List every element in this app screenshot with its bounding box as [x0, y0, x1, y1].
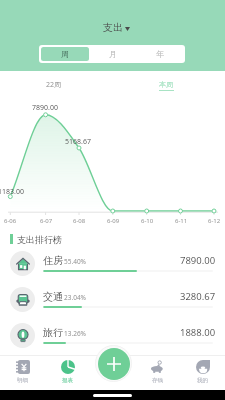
- staticText: 6-11: [175, 217, 188, 225]
- button[interactable]: 存钱: [135, 360, 180, 390]
- button[interactable]: 支出: [101, 20, 133, 34]
- staticText: 23.04%: [64, 293, 87, 302]
- staticText: 13.26%: [64, 329, 87, 338]
- button[interactable]: 住房: [0, 246, 225, 282]
- button[interactable]: 周: [41, 47, 89, 61]
- staticText: 报表: [62, 377, 73, 384]
- staticText: 我的: [197, 377, 208, 384]
- button[interactable]: 本周: [159, 80, 174, 91]
- button[interactable]: 我的: [180, 360, 225, 390]
- staticText: 交通: [43, 290, 63, 303]
- staticText: 住房: [43, 254, 63, 267]
- staticText: 5168.67: [65, 137, 91, 147]
- staticText: 周: [61, 49, 69, 59]
- staticText: 6-09: [107, 217, 120, 225]
- staticText: 22周: [46, 80, 62, 90]
- staticText: 旅行: [43, 326, 63, 339]
- staticText: 7890.00: [180, 254, 216, 267]
- staticText: 3280.67: [180, 290, 216, 303]
- staticText: 支出排行榜: [17, 234, 62, 245]
- staticText: 6-06: [4, 217, 17, 225]
- staticText: 支出: [103, 21, 123, 34]
- staticText: 年: [156, 49, 164, 59]
- staticText: 6-10: [141, 217, 154, 225]
- button[interactable]: 交通: [0, 282, 225, 318]
- button[interactable]: Add record: [98, 348, 130, 380]
- button[interactable]: 年: [136, 47, 183, 61]
- staticText: 55.40%: [64, 257, 87, 266]
- staticText: 1888.00: [180, 326, 216, 339]
- staticText: 6-12: [208, 217, 221, 225]
- staticText: 本周: [159, 80, 173, 89]
- staticText: 月: [109, 49, 117, 59]
- button[interactable]: 月: [89, 47, 136, 61]
- staticText: 1183.00: [0, 187, 24, 197]
- staticText: 存钱: [152, 377, 163, 384]
- button[interactable]: 报表: [45, 360, 90, 390]
- button[interactable]: 旅行: [0, 318, 225, 354]
- staticText: 7890.00: [32, 103, 58, 113]
- staticText: 明细: [17, 377, 28, 384]
- button[interactable]: 明细: [0, 360, 45, 390]
- staticText: 6-07: [40, 217, 53, 225]
- staticText: 6-08: [73, 217, 86, 225]
